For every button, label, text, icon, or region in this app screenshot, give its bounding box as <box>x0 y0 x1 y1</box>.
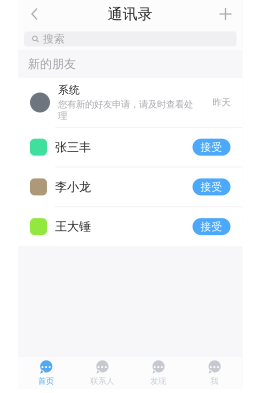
button[interactable]: Add <box>212 0 238 28</box>
button[interactable]: 联系人 <box>74 357 130 389</box>
staticText: 系统 <box>58 83 80 97</box>
staticText: 搜索 <box>43 32 65 45</box>
staticText: 联系人 <box>90 376 114 386</box>
staticText: 首页 <box>38 376 54 386</box>
button[interactable]: 发现 <box>130 357 186 389</box>
button[interactable]: 王大锤 <box>18 207 242 246</box>
button[interactable]: 我 <box>186 357 242 389</box>
button[interactable]: 张三丰 <box>18 128 242 167</box>
staticText: 新的朋友 <box>28 57 76 71</box>
button[interactable]: 系统 <box>18 78 242 127</box>
staticText: 昨天 <box>212 97 230 108</box>
staticText: 王大锤 <box>55 219 91 234</box>
staticText: 发现 <box>150 376 166 386</box>
staticText: 接受 <box>200 220 222 233</box>
staticText: 我 <box>210 376 218 386</box>
button[interactable]: 首页 <box>18 357 74 389</box>
button[interactable]: Back <box>22 0 48 28</box>
staticText: 李小龙 <box>55 179 91 194</box>
button[interactable]: 李小龙 <box>18 167 242 206</box>
staticText: 通讯录 <box>108 5 153 23</box>
staticText: 您有新的好友申请，请及时查看处理 <box>58 99 193 121</box>
button[interactable]: 搜索 <box>18 28 242 50</box>
staticText: 张三丰 <box>55 140 91 154</box>
staticText: 接受 <box>200 180 222 193</box>
staticText: 接受 <box>200 141 222 154</box>
